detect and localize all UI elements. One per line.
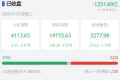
staticText: 较上一日增加 — [85, 69, 109, 74]
button[interactable]: 上证指数 — [1, 20, 39, 50]
staticText: 14155.63 — [49, 32, 71, 39]
staticText: 2233 — [110, 55, 118, 60]
staticText: -138.43 — [48, 44, 60, 47]
staticText: 3192 — [2, 55, 10, 60]
staticText: 创业板指 — [92, 22, 108, 27]
button[interactable]: 深证成指 — [41, 20, 79, 50]
staticText: 主力资金净流入 — [97, 8, 118, 11]
staticText: 4113.65 — [11, 32, 30, 39]
staticText: 2026-01-20 星期二 — [2, 11, 33, 16]
staticText: -0.97% — [62, 44, 72, 47]
staticText: 3277.98 — [90, 32, 109, 39]
staticText: -0.01% — [20, 44, 30, 47]
staticText: -0.35 — [10, 44, 18, 47]
staticText: +720 — [110, 69, 118, 74]
staticText: 深证成指 — [52, 22, 68, 27]
button[interactable]: 创业板指 — [81, 20, 118, 50]
staticText: -1.79% — [101, 44, 111, 47]
staticText: -59.63 — [89, 44, 99, 47]
staticText: -1251.89亿 — [92, 0, 118, 8]
staticText: 已收盘 — [6, 0, 21, 7]
staticText: 上证指数 — [12, 22, 28, 27]
staticText: 日成交额合计 28041亿 — [2, 69, 41, 74]
